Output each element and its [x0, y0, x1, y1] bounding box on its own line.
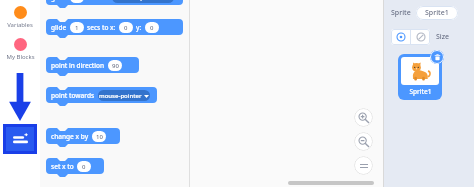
button[interactable]: 10: [92, 131, 106, 142]
button[interactable]: set x to: [46, 158, 104, 177]
staticText: glide: [51, 0, 67, 2]
staticText: random position: [116, 0, 164, 2]
staticText: Variables: [7, 21, 33, 29]
button[interactable]: My Blocks: [0, 38, 40, 61]
button[interactable]: Sprite1: [398, 54, 442, 100]
staticText: My Blocks: [6, 53, 35, 61]
button[interactable]: Hide sprite: [411, 29, 430, 45]
staticText: 1: [75, 24, 79, 32]
staticText: point in direction: [51, 61, 105, 70]
button[interactable]: Reset zoom: [354, 156, 373, 175]
staticText: 0: [150, 24, 154, 32]
staticText: 10: [96, 133, 103, 141]
staticText: 0: [82, 163, 86, 171]
button[interactable]: Zoom out: [354, 132, 373, 151]
staticText: 90: [112, 62, 119, 70]
button[interactable]: 90: [108, 60, 122, 71]
staticText: Size: [436, 32, 450, 42]
staticText: glide: [51, 23, 67, 32]
staticText: point towards: [51, 91, 95, 100]
button[interactable]: Add Extension: [6, 127, 34, 151]
staticText: mouse-pointer: [99, 92, 142, 100]
button[interactable]: mouse-pointer: [98, 90, 150, 101]
button[interactable]: Sprite1: [416, 6, 458, 20]
button[interactable]: glide: [46, 0, 183, 8]
staticText: 0: [124, 24, 128, 32]
staticText: change x by: [51, 132, 89, 141]
button[interactable]: Zoom in: [354, 108, 373, 127]
button[interactable]: 0: [145, 22, 159, 33]
staticText: set x to: [51, 162, 74, 171]
staticText: Sprite1: [425, 8, 449, 18]
staticText: Sprite1: [409, 87, 432, 96]
button[interactable]: 0: [77, 161, 91, 172]
button[interactable]: change x by: [46, 128, 120, 147]
button[interactable]: 1: [70, 22, 84, 33]
button[interactable]: point towards: [46, 87, 157, 106]
staticText: secs to x:: [87, 23, 116, 32]
button[interactable]: random position: [112, 0, 174, 3]
button[interactable]: point in direction: [46, 57, 139, 76]
button[interactable]: Variables: [0, 6, 40, 29]
button[interactable]: Delete sprite: [430, 50, 444, 64]
button[interactable]: 1: [70, 0, 84, 3]
staticText: Sprite: [391, 8, 411, 18]
staticText: y:: [136, 23, 142, 32]
button[interactable]: Show sprite: [391, 29, 410, 45]
button[interactable]: 0: [119, 22, 133, 33]
button[interactable]: glide: [46, 19, 183, 38]
